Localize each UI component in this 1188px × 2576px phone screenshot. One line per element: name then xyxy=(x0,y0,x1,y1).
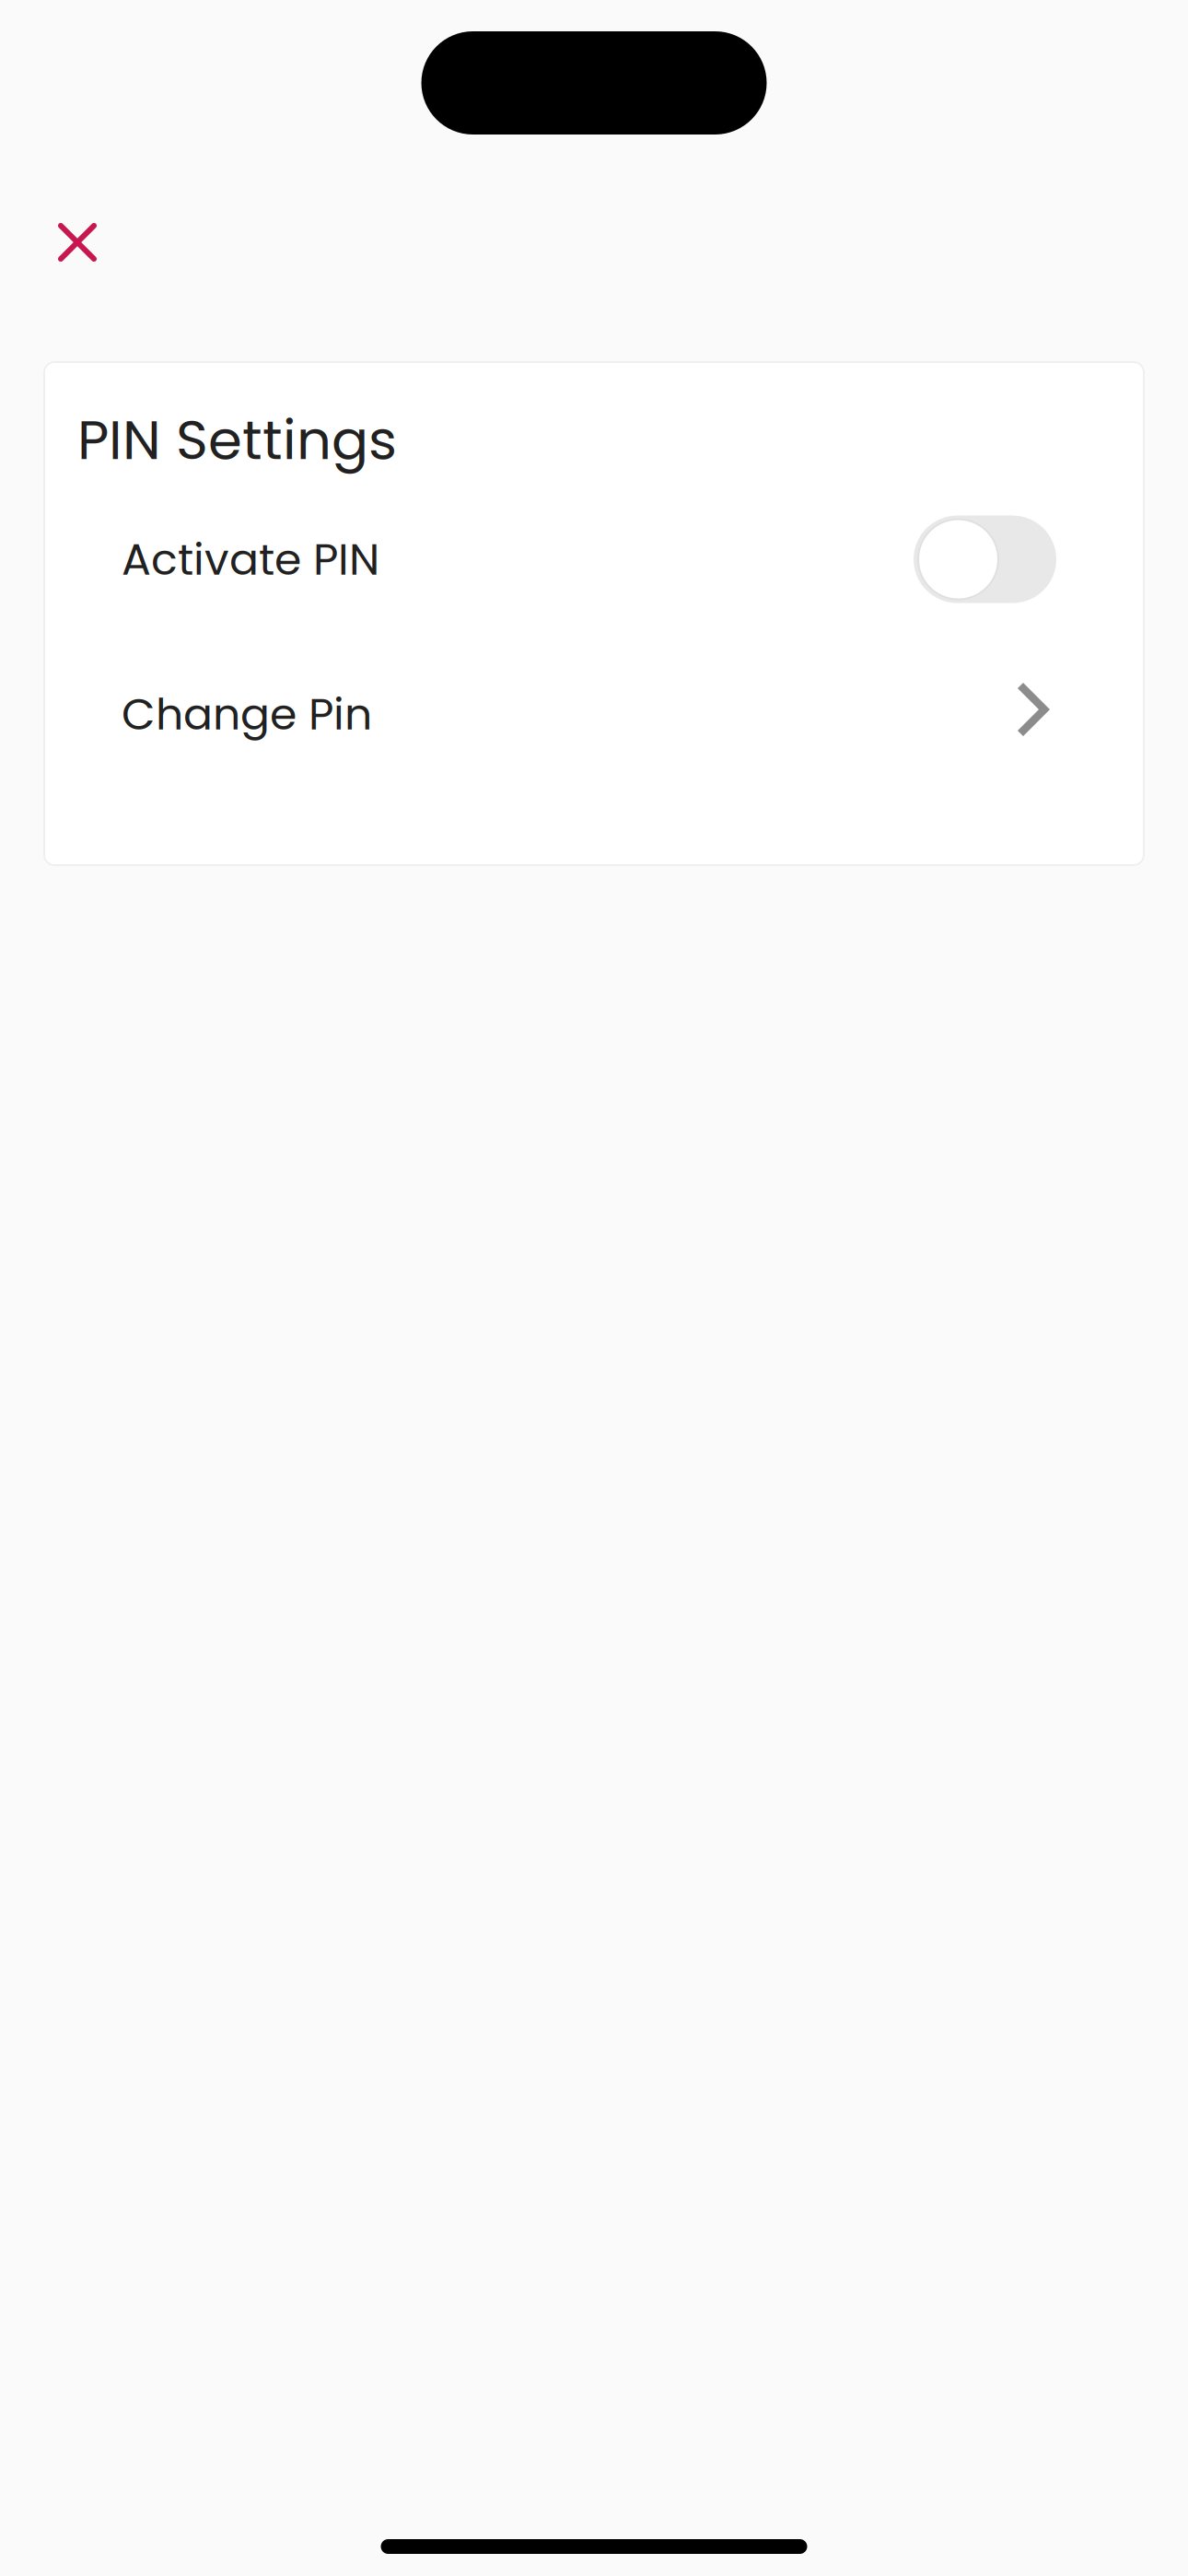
button[interactable]: Change Pin xyxy=(43,663,1145,766)
button[interactable]: Activate PIN xyxy=(43,508,1145,611)
staticText: PIN Settings xyxy=(77,402,397,478)
staticText: Activate PIN xyxy=(122,529,379,590)
staticText: Change Pin xyxy=(122,684,372,745)
button[interactable]: Close xyxy=(0,193,129,291)
